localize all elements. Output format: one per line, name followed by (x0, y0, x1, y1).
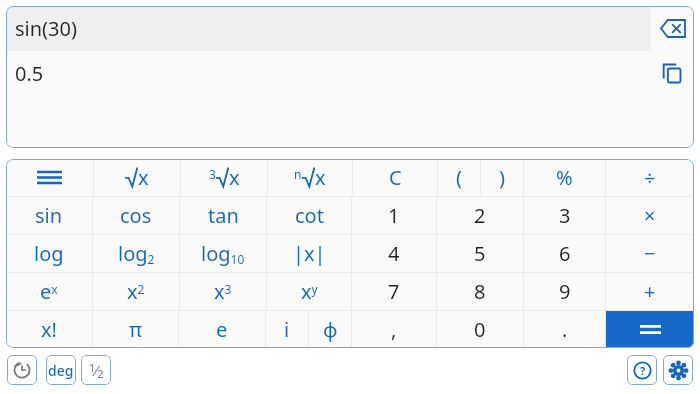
staticText: x3 (214, 278, 232, 305)
staticText: 2 (474, 202, 486, 229)
button[interactable]: Fraction mode (81, 355, 111, 385)
staticText: tan (208, 202, 239, 229)
button[interactable]: Copy result (651, 51, 694, 95)
staticText: x2 (127, 278, 145, 305)
button[interactable] (606, 311, 694, 348)
button[interactable]: 5 (437, 235, 523, 272)
button[interactable]: e (179, 311, 265, 348)
button[interactable]: Help (627, 355, 657, 385)
staticText: 7 (388, 278, 400, 305)
staticText: cos (120, 202, 152, 229)
staticText: , (391, 316, 397, 343)
staticText: 3 (559, 202, 571, 229)
staticText: . (562, 316, 568, 343)
button[interactable]: x (94, 159, 180, 196)
button[interactable]: ( (438, 159, 480, 196)
staticText: 0 (474, 316, 486, 343)
button[interactable]: x! (6, 311, 92, 348)
button[interactable]: 7 (352, 273, 436, 310)
staticText: ) (499, 164, 505, 191)
button[interactable]: ) (481, 159, 523, 196)
button[interactable]: cot (267, 197, 351, 234)
button[interactable]: C (353, 159, 437, 196)
button[interactable]: 9 (524, 273, 605, 310)
staticText: ϕ (323, 316, 338, 343)
staticText: ? (640, 363, 646, 378)
button[interactable]: x3 (180, 273, 266, 310)
staticText: 8 (474, 278, 486, 305)
staticText: ex (40, 278, 58, 305)
button[interactable]: 0 (437, 311, 523, 348)
staticText: x (315, 164, 326, 191)
staticText: x (138, 164, 149, 191)
staticText: 0.5 (15, 60, 44, 87)
staticText: × (644, 202, 656, 229)
button[interactable]: |x| (267, 235, 351, 272)
staticText: deg (48, 361, 74, 380)
button[interactable]: % (524, 159, 605, 196)
staticText: cot (295, 202, 324, 229)
button[interactable]: 4 (352, 235, 436, 272)
button[interactable]: Settings (663, 355, 693, 385)
button[interactable]: log (6, 235, 92, 272)
staticText: 5 (474, 240, 486, 267)
button[interactable]: 8 (437, 273, 523, 310)
staticText: i (284, 316, 290, 343)
button[interactable]: . (524, 311, 605, 348)
button[interactable]: History (7, 355, 37, 385)
staticText: log10 (201, 240, 245, 268)
button[interactable]: ex (6, 273, 92, 310)
button[interactable]: Menu (6, 159, 93, 196)
button[interactable]: cos (93, 197, 179, 234)
staticText: xy (301, 278, 318, 305)
button[interactable]: ÷ (606, 159, 694, 196)
staticText: % (556, 164, 573, 191)
button[interactable]: sin (6, 197, 92, 234)
staticText: e (216, 316, 228, 343)
button[interactable]: 1 (352, 197, 436, 234)
staticText: ÷ (644, 164, 656, 191)
button[interactable]: × (606, 197, 694, 234)
staticText: n (294, 166, 302, 182)
button[interactable]: 6 (524, 235, 605, 272)
staticText: 6 (559, 240, 571, 267)
staticText: |x| (293, 240, 326, 267)
button[interactable]: 3 (524, 197, 605, 234)
button[interactable]: Angle unit degrees (46, 355, 76, 385)
staticText: − (644, 240, 656, 267)
staticText: log (34, 240, 64, 267)
staticText: 1 (388, 202, 400, 229)
staticText: 3 (209, 166, 216, 182)
staticText: + (644, 278, 656, 305)
button[interactable]: log10 (180, 235, 266, 272)
button[interactable]: xy (267, 273, 351, 310)
button[interactable]: n (268, 159, 352, 196)
staticText: x (229, 164, 240, 191)
staticText: sin(30) (15, 15, 77, 42)
staticText: ( (456, 164, 462, 191)
staticText: C (389, 164, 402, 191)
staticText: π (129, 316, 143, 343)
button[interactable]: tan (180, 197, 266, 234)
button[interactable]: , (352, 311, 436, 348)
button[interactable]: + (606, 273, 694, 310)
button[interactable]: Backspace (651, 6, 694, 51)
staticText: 1⁄2 (89, 360, 104, 381)
button[interactable]: π (93, 311, 178, 348)
staticText: sin (35, 202, 63, 229)
button[interactable]: ϕ (309, 311, 351, 348)
button[interactable]: 3 (181, 159, 267, 196)
staticText: 9 (559, 278, 571, 305)
staticText: x! (41, 316, 57, 343)
button[interactable]: 2 (437, 197, 523, 234)
staticText: log2 (118, 240, 155, 268)
button[interactable]: − (606, 235, 694, 272)
staticText: 4 (388, 240, 400, 267)
button[interactable]: x2 (93, 273, 179, 310)
button[interactable]: i (266, 311, 308, 348)
button[interactable]: log2 (93, 235, 179, 272)
